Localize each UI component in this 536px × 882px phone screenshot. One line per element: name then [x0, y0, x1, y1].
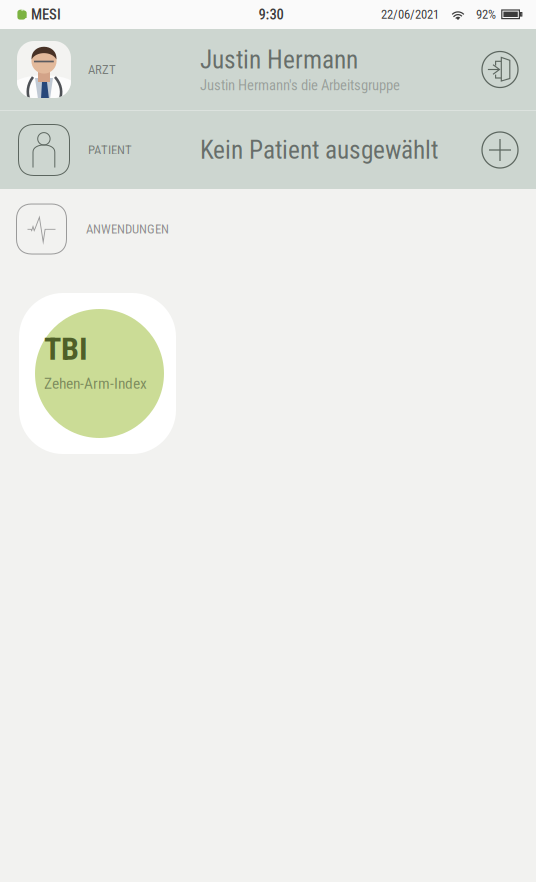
staticText: PATIENT [88, 142, 132, 157]
staticText: Justin Hermann [200, 45, 358, 75]
staticText: ANWENDUNGEN [86, 221, 169, 236]
button[interactable]: PATIENT [0, 111, 536, 189]
staticText: MESI [31, 6, 61, 23]
staticText: 9:30 [258, 6, 283, 23]
staticText: ARZT [88, 62, 116, 77]
button[interactable]: Patient hinzufügen [478, 128, 522, 172]
staticText: Kein Patient ausgewählt [200, 135, 438, 165]
staticText: TBI [44, 330, 88, 367]
staticText: Justin Hermann's die Arbeitsgruppe [200, 77, 400, 94]
button[interactable]: Abmelden [478, 47, 522, 91]
button[interactable]: TBI [19, 293, 176, 454]
staticText: 92% [476, 7, 496, 22]
staticText: Zehen-Arm-Index [44, 374, 147, 393]
button[interactable]: ARZT [0, 29, 536, 110]
staticText: 22/06/2021 [381, 7, 439, 22]
